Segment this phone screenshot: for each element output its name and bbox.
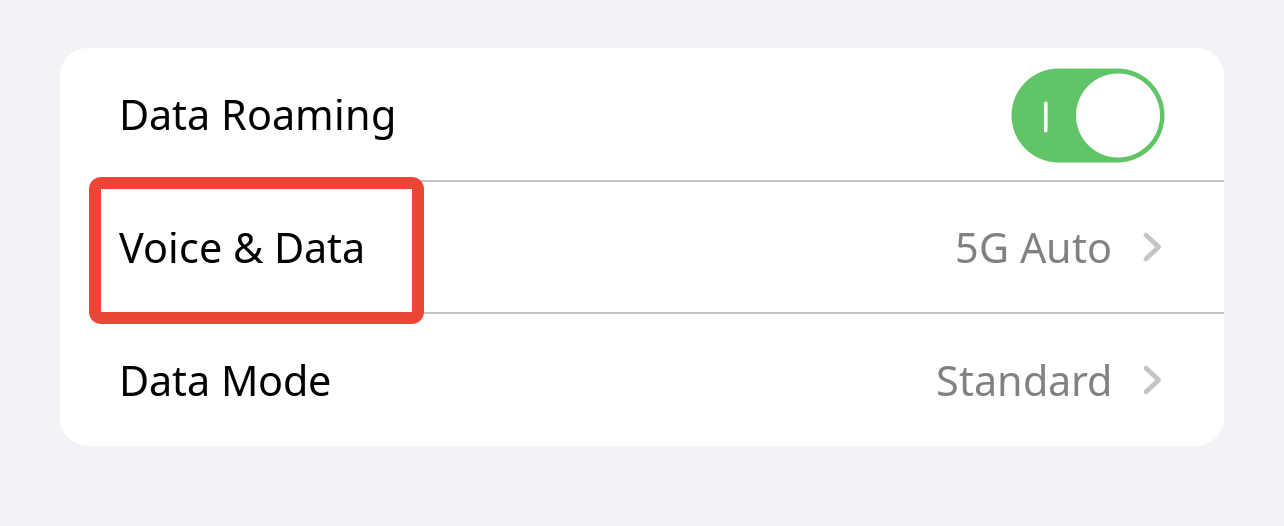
- button[interactable]: Voice & Data: [60, 182, 1224, 312]
- staticText: Data Mode: [119, 353, 331, 407]
- staticText: Standard: [936, 353, 1112, 407]
- staticText: 5G Auto: [955, 220, 1112, 274]
- button[interactable]: Data Roaming: [60, 48, 1224, 180]
- button[interactable]: Data Roaming, on: [1011, 68, 1164, 162]
- staticText: Voice & Data: [119, 220, 365, 274]
- button[interactable]: Data Mode: [60, 314, 1224, 446]
- staticText: Data Roaming: [119, 87, 396, 141]
